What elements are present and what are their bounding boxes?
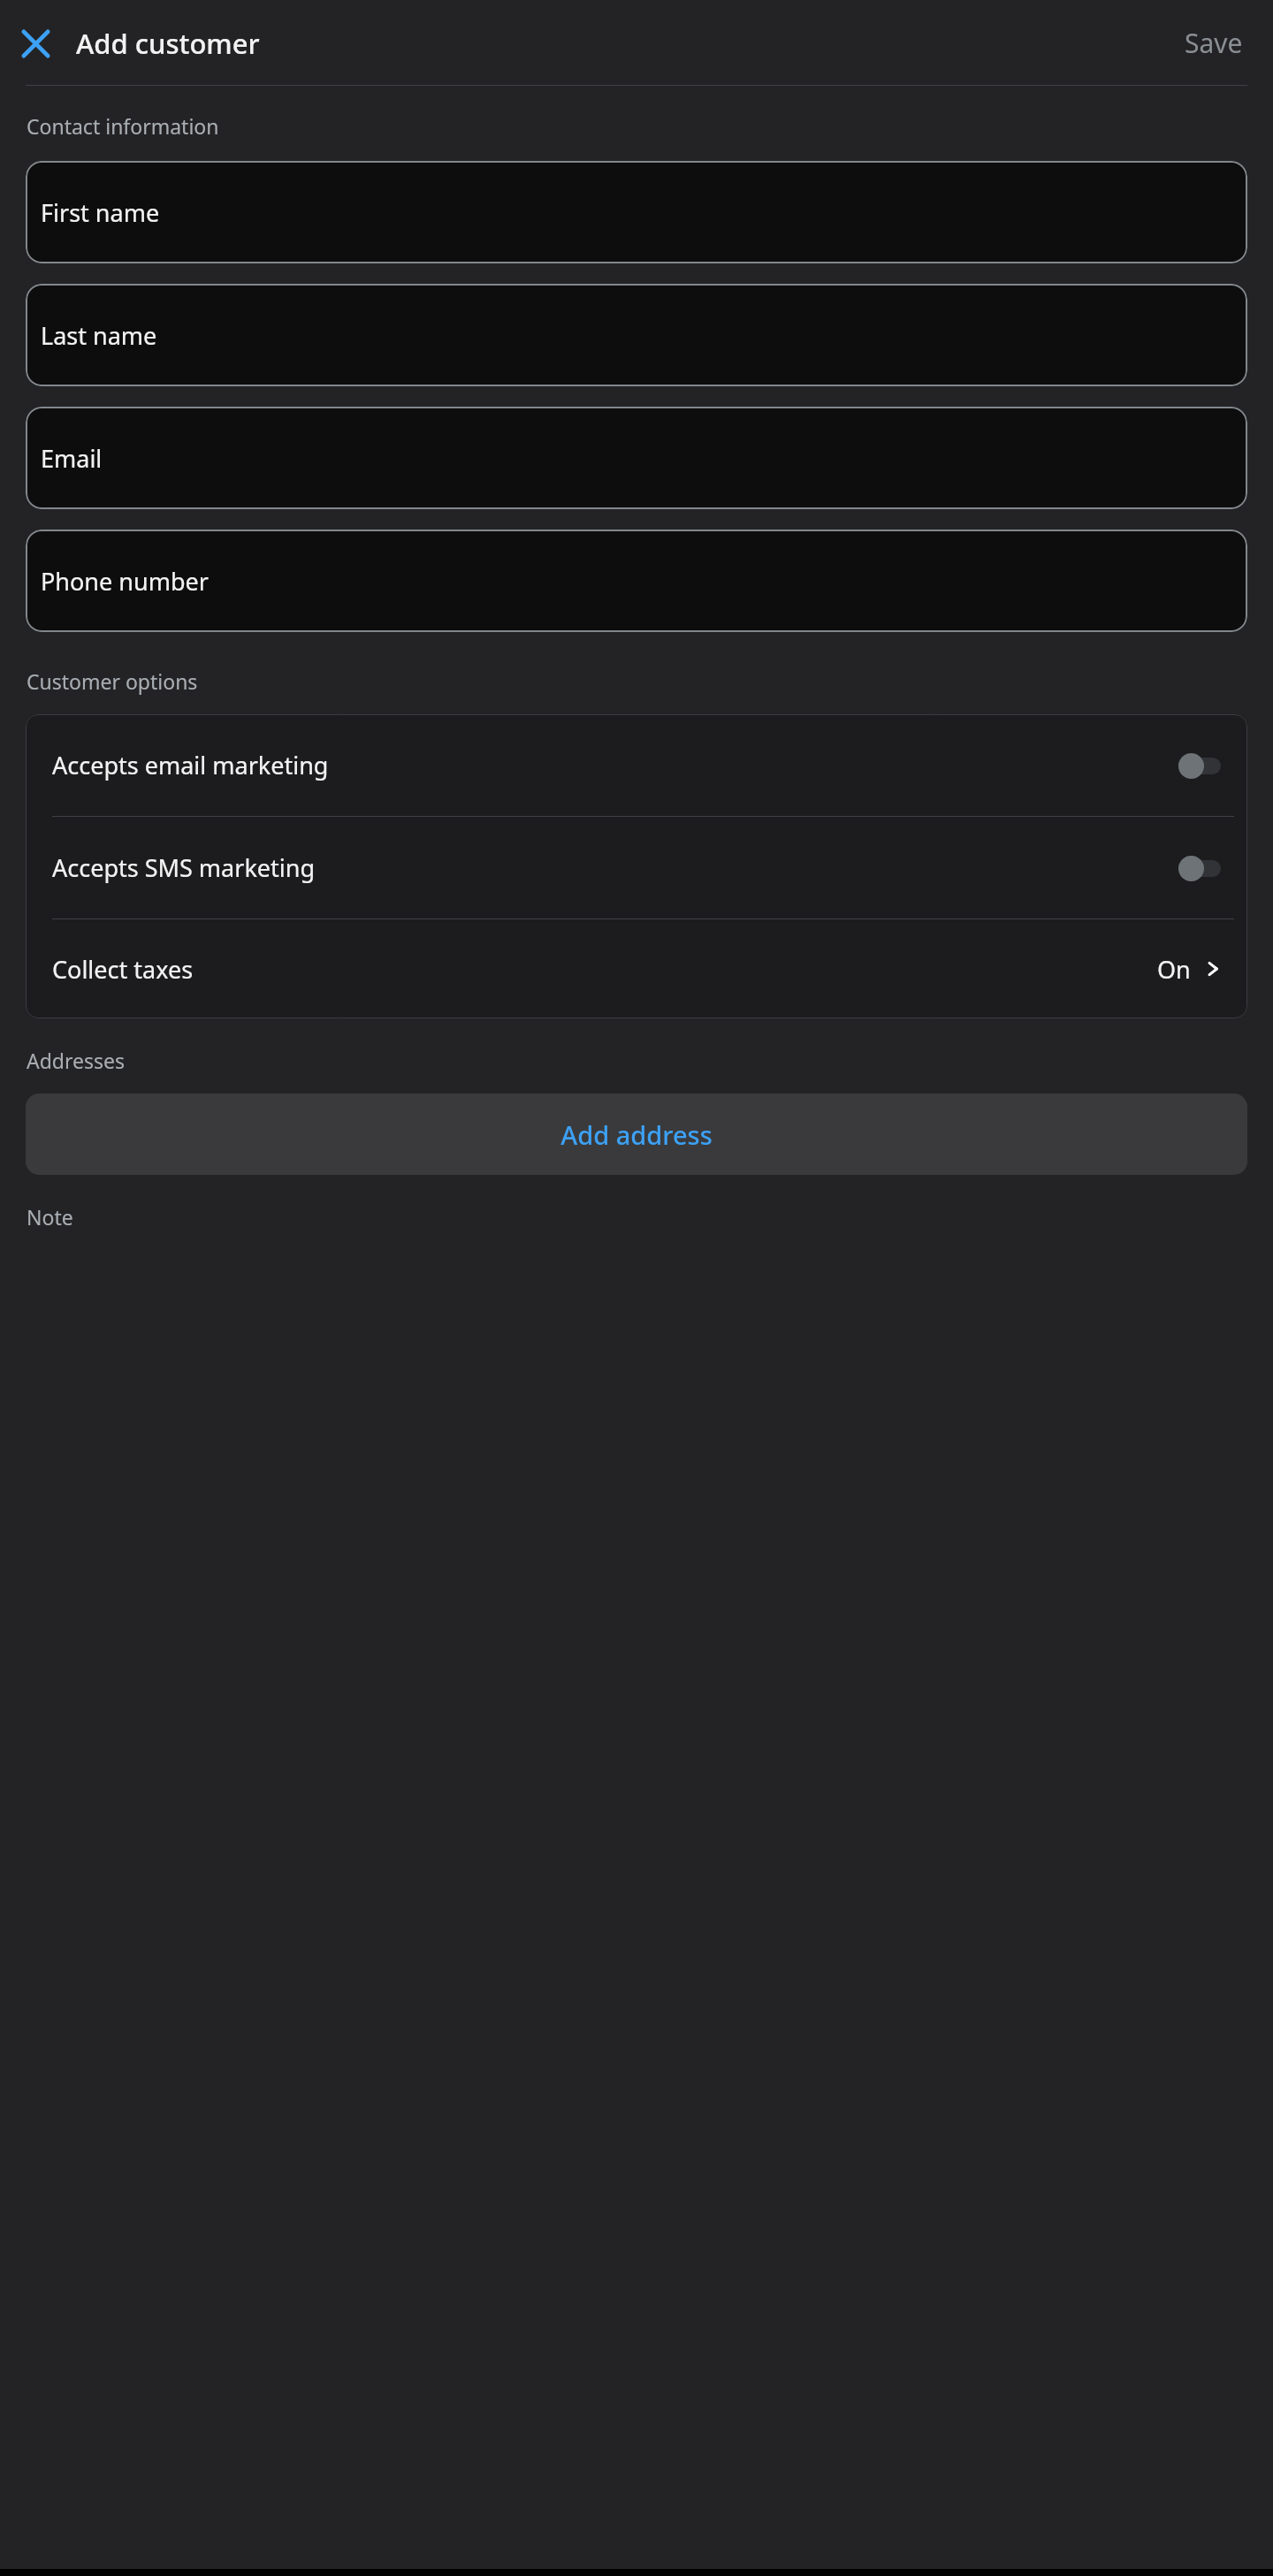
staticText: First name: [41, 196, 160, 229]
staticText: On: [1157, 953, 1191, 986]
staticText: Add address: [560, 1117, 713, 1152]
button[interactable]: Accepts SMS marketing: [26, 817, 1247, 918]
staticText: Note: [27, 1203, 73, 1231]
staticText: Email: [41, 442, 103, 475]
button[interactable]: Email: [26, 407, 1247, 509]
staticText: Save: [1185, 25, 1243, 61]
staticText: Customer options: [27, 667, 198, 695]
staticText: Accepts SMS marketing: [52, 851, 1178, 884]
button[interactable]: Close: [12, 20, 58, 66]
button[interactable]: Save: [1167, 14, 1261, 72]
staticText: Collect taxes: [52, 953, 1157, 986]
staticText: Contact information: [27, 112, 219, 140]
button[interactable]: Last name: [26, 284, 1247, 386]
button[interactable]: First name: [26, 161, 1247, 263]
staticText: Last name: [41, 319, 157, 352]
button[interactable]: Add address: [26, 1094, 1247, 1175]
button[interactable]: Collect taxes: [26, 919, 1247, 1018]
button[interactable]: Phone number: [26, 530, 1247, 632]
staticText: Add customer: [76, 25, 1167, 62]
button[interactable]: Accepts email marketing: [26, 714, 1247, 816]
staticText: Addresses: [27, 1047, 126, 1074]
staticText: Accepts email marketing: [52, 749, 1178, 781]
staticText: Phone number: [41, 565, 209, 598]
